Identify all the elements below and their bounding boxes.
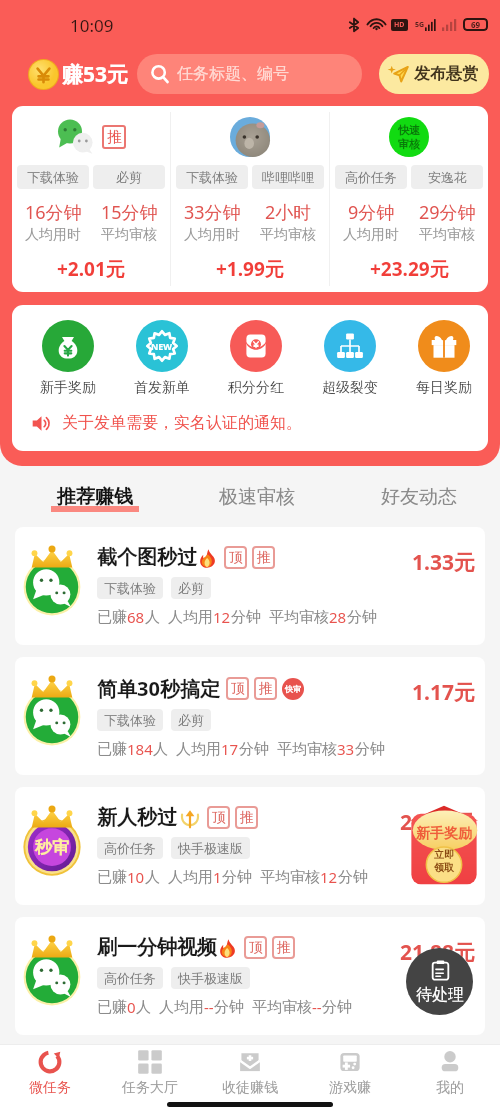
button[interactable]: 刷一分钟视频 bbox=[15, 917, 485, 1035]
button[interactable]: 好友动态 bbox=[338, 466, 500, 527]
staticText: 9分钟 bbox=[348, 200, 395, 225]
staticText: +1.99元 bbox=[216, 256, 284, 282]
button[interactable]: 微任务 bbox=[0, 1044, 100, 1111]
staticText: -- bbox=[312, 997, 322, 1017]
button[interactable]: 新手奖励 bbox=[36, 320, 100, 397]
staticText: 平均审核 bbox=[260, 868, 320, 887]
button[interactable]: 我的 bbox=[400, 1044, 500, 1111]
staticText: +2.01元 bbox=[57, 256, 125, 282]
staticText: 分钟 bbox=[231, 608, 261, 627]
staticText: 哔哩哔哩 bbox=[262, 169, 314, 185]
button[interactable]: 关于发单需要，实名认证的通知。 bbox=[31, 408, 488, 438]
staticText: 推 bbox=[240, 809, 254, 827]
staticText: 任务标题、编号 bbox=[177, 64, 289, 84]
button[interactable]: 下载体验 bbox=[171, 106, 329, 292]
staticText: 人均用时 bbox=[343, 226, 399, 244]
staticText: 游戏赚 bbox=[329, 1079, 371, 1097]
staticText: 1.33元 bbox=[412, 548, 475, 577]
staticText: 高价任务 bbox=[104, 970, 156, 986]
staticText: 收徒赚钱 bbox=[222, 1079, 278, 1097]
staticText: 分钟 bbox=[347, 608, 377, 627]
staticText: 10 bbox=[127, 867, 145, 887]
button[interactable]: 推 bbox=[12, 106, 170, 292]
staticText: 10:09 bbox=[70, 14, 114, 37]
staticText: 平均审核 bbox=[419, 226, 475, 244]
staticText: 推 bbox=[277, 939, 291, 957]
staticText: 分钟 bbox=[222, 868, 252, 887]
staticText: 必剪 bbox=[178, 580, 204, 596]
staticText: 下载体验 bbox=[104, 712, 156, 728]
button[interactable]: 秒审 bbox=[15, 787, 485, 905]
staticText: 新手奖励 bbox=[416, 825, 472, 843]
staticText: 每日奖励 bbox=[416, 379, 472, 397]
button[interactable]: NEW bbox=[130, 320, 194, 397]
button[interactable]: 快速 bbox=[330, 106, 488, 292]
button[interactable]: 新手奖励红包 bbox=[410, 804, 478, 886]
button[interactable]: 推荐赚钱 bbox=[14, 466, 176, 527]
staticText: 截个图秒过 bbox=[97, 545, 197, 570]
button[interactable]: 发布悬赏 bbox=[379, 54, 489, 94]
staticText: 好友动态 bbox=[381, 485, 457, 509]
staticText: 微任务 bbox=[29, 1079, 71, 1097]
staticText: 2小时 bbox=[265, 200, 312, 225]
button[interactable]: 超级裂变 bbox=[318, 320, 382, 397]
staticText: 15分钟 bbox=[101, 200, 158, 225]
button[interactable]: 待处理 bbox=[406, 948, 473, 1015]
staticText: 待处理 bbox=[416, 985, 464, 1005]
staticText: 快审 bbox=[285, 684, 301, 694]
button[interactable]: 极速审核 bbox=[176, 466, 338, 527]
staticText: 16分钟 bbox=[25, 200, 82, 225]
button[interactable]: 任务标题、编号 bbox=[137, 54, 362, 94]
staticText: 推 bbox=[257, 549, 271, 567]
staticText: 人均用 bbox=[176, 740, 221, 759]
staticText: 任务大厅 bbox=[122, 1079, 178, 1097]
staticText: 17 bbox=[221, 739, 239, 759]
staticText: 推 bbox=[259, 680, 273, 698]
staticText: 分钟 bbox=[355, 740, 385, 759]
staticText: 关于发单需要，实名认证的通知。 bbox=[62, 413, 302, 433]
staticText: 人 bbox=[145, 608, 160, 627]
staticText: 下载体验 bbox=[186, 169, 238, 185]
staticText: 极速审核 bbox=[219, 485, 295, 509]
staticText: 人均用 bbox=[168, 868, 213, 887]
staticText: 快手极速版 bbox=[178, 840, 243, 856]
staticText: 人 bbox=[153, 740, 168, 759]
staticText: 新手奖励 bbox=[40, 379, 96, 397]
staticText: 平均审核 bbox=[252, 998, 312, 1017]
button[interactable]: 收徒赚钱 bbox=[200, 1044, 300, 1111]
staticText: NEW bbox=[151, 340, 173, 352]
staticText: 1 bbox=[213, 867, 222, 887]
staticText: 下载体验 bbox=[104, 580, 156, 596]
button[interactable]: 游戏赚 bbox=[300, 1044, 400, 1111]
staticText: 下载体验 bbox=[27, 169, 79, 185]
staticText: 分钟 bbox=[322, 998, 352, 1017]
staticText: 分钟 bbox=[338, 868, 368, 887]
staticText: 推荐赚钱 bbox=[57, 485, 133, 509]
staticText: 33分钟 bbox=[184, 200, 241, 225]
staticText: 必剪 bbox=[116, 169, 142, 185]
staticText: HD bbox=[394, 20, 405, 30]
staticText: 必剪 bbox=[178, 712, 204, 728]
button[interactable]: 每日奖励 bbox=[412, 320, 476, 397]
staticText: -- bbox=[204, 997, 214, 1017]
staticText: 高价任务 bbox=[345, 169, 397, 185]
staticText: 首发新单 bbox=[134, 379, 190, 397]
staticText: 顶 bbox=[229, 549, 243, 567]
staticText: 184 bbox=[127, 739, 153, 759]
button[interactable]: 截个图秒过 bbox=[15, 527, 485, 645]
button[interactable]: 任务大厅 bbox=[100, 1044, 200, 1111]
button[interactable]: 积分分红 bbox=[224, 320, 288, 397]
staticText: 29分钟 bbox=[419, 200, 476, 225]
staticText: 快手极速版 bbox=[178, 970, 243, 986]
staticText: 平均审核 bbox=[277, 740, 337, 759]
staticText: 顶 bbox=[212, 809, 226, 827]
staticText: 超级裂变 bbox=[322, 379, 378, 397]
staticText: 69 bbox=[471, 19, 481, 30]
staticText: 5G bbox=[415, 20, 425, 30]
staticText: 简单30秒搞定 bbox=[97, 675, 220, 702]
staticText: 33 bbox=[337, 739, 355, 759]
staticText: 平均审核 bbox=[269, 608, 329, 627]
staticText: 人均用 bbox=[168, 608, 213, 627]
staticText: 积分分红 bbox=[228, 379, 284, 397]
button[interactable]: 简单30秒搞定 bbox=[15, 657, 485, 775]
